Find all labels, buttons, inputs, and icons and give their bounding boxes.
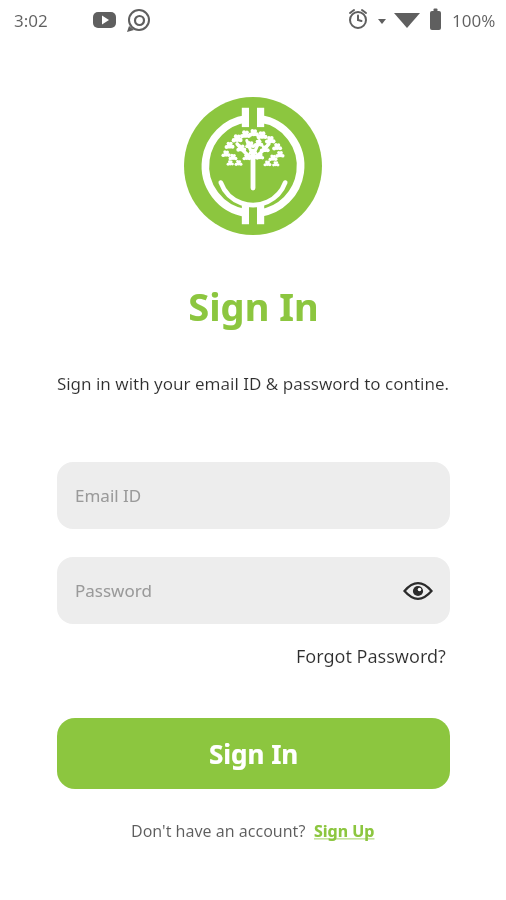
staticText: Don't have an account? (131, 820, 306, 842)
staticText: Email ID (75, 484, 142, 507)
button[interactable]: Sign Up (314, 820, 375, 842)
button[interactable]: Password (57, 557, 450, 624)
staticText: Sign Up (314, 820, 375, 842)
staticText: Sign In (188, 280, 319, 332)
staticText: 100% (452, 9, 496, 32)
button[interactable]: Sign In (57, 718, 450, 789)
staticText: Sign In (209, 736, 299, 771)
staticText: 3:02 (14, 9, 48, 32)
staticText: Sign in with your email ID & password to… (48, 372, 458, 395)
button[interactable]: Email ID (57, 462, 450, 529)
staticText: Forgot Password? (296, 644, 446, 669)
button[interactable]: Show password (400, 573, 436, 609)
staticText: Password (75, 579, 152, 602)
button[interactable]: Forgot Password? (292, 640, 450, 673)
